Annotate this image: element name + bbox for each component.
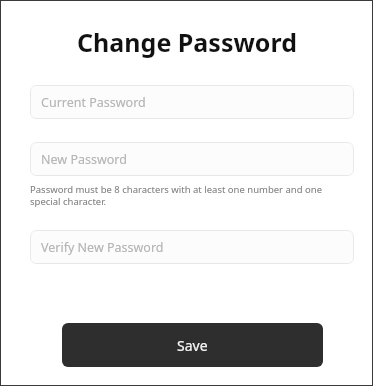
staticText: Password must be 8 characters with at le… [30, 183, 345, 208]
staticText: Verify New Password [41, 239, 164, 256]
button[interactable]: New Password [30, 142, 354, 176]
staticText: Save [177, 336, 208, 355]
staticText: Change Password [77, 25, 297, 59]
button[interactable]: Current Password [30, 85, 354, 119]
button[interactable]: Verify New Password [30, 230, 354, 264]
staticText: New Password [41, 151, 127, 168]
button[interactable]: Save [62, 323, 323, 367]
staticText: Current Password [41, 94, 146, 111]
